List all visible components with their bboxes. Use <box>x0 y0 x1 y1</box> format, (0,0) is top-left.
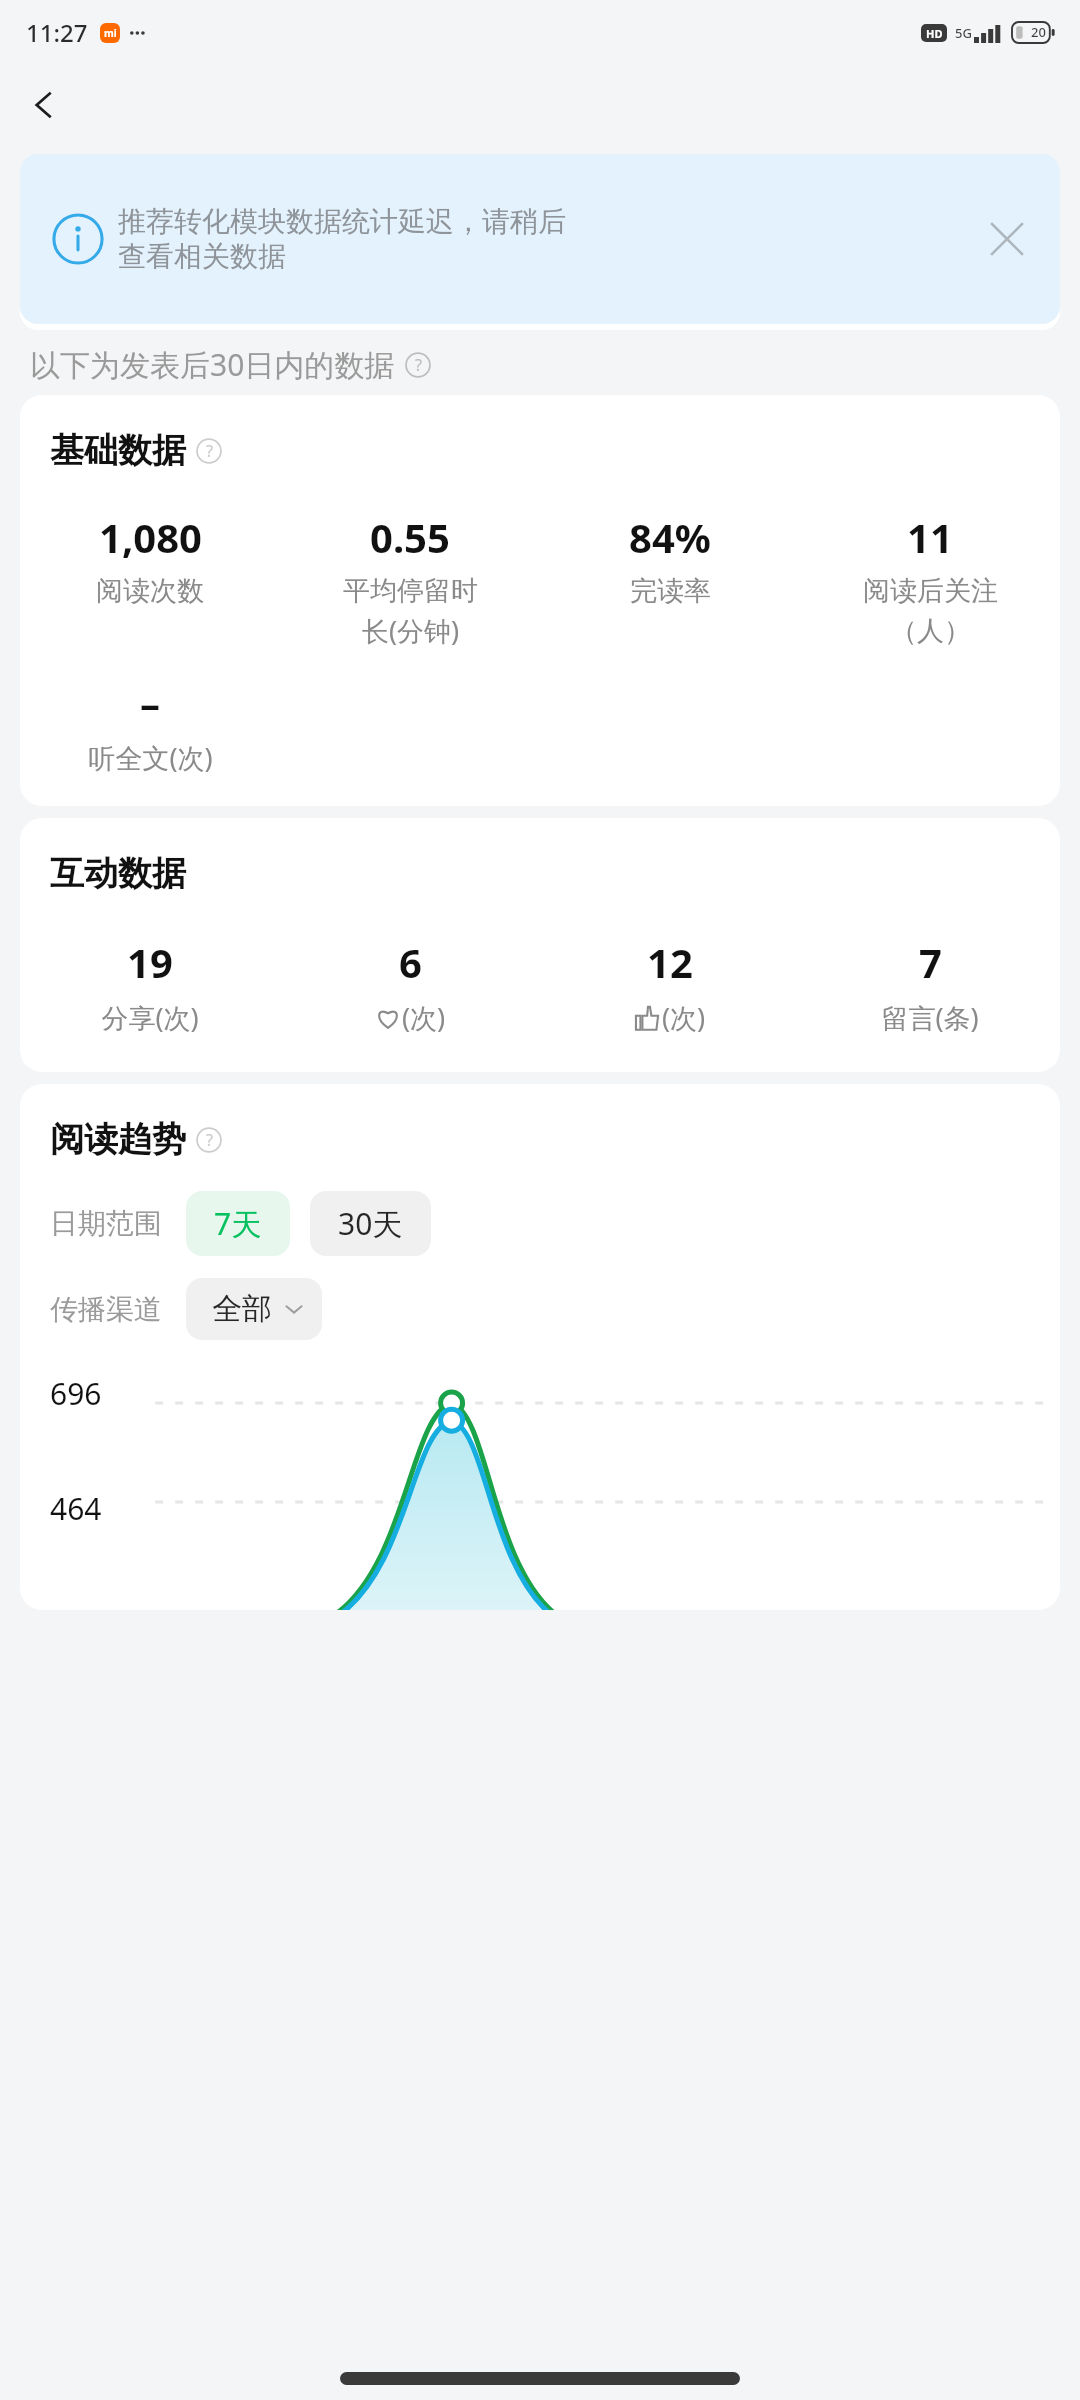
staticText: 平均停留时 长(分钟) <box>343 574 478 649</box>
staticText: (次) <box>402 999 446 1036</box>
staticText: 以下为发表后30日内的数据 <box>30 344 395 385</box>
staticText: 12 <box>647 935 693 989</box>
staticText: ? <box>415 354 422 376</box>
button[interactable]: Back <box>16 77 72 133</box>
staticText: mi <box>104 26 117 40</box>
button[interactable]: 已开启群发通知 2025/10/13 <box>20 210 1060 330</box>
staticText: 0.55 <box>370 510 450 564</box>
staticText: 1,080 <box>99 510 202 564</box>
button[interactable]: 1,080 <box>20 510 280 608</box>
staticText: 11:27 <box>26 16 88 49</box>
staticText: 7天 <box>214 1203 262 1244</box>
staticText: 日期范围 <box>50 1206 162 1241</box>
button[interactable]: 19 <box>20 935 280 1036</box>
button[interactable]: 30天 <box>310 1191 431 1256</box>
staticText: 阅读次数 <box>96 574 204 608</box>
staticText: 查看相关数据 <box>118 239 286 274</box>
button[interactable]: 7天 <box>186 1191 290 1256</box>
staticText: 完读率 <box>630 574 711 608</box>
staticText: 30天 <box>338 1203 403 1244</box>
staticText: ? <box>206 440 213 462</box>
button[interactable]: 12 <box>540 935 800 1036</box>
staticText: 分享(次) <box>101 999 199 1036</box>
staticText: 互动数据 <box>50 852 186 895</box>
button[interactable]: 推荐转化模块数据统计延迟，请稍后 <box>20 154 1060 324</box>
button[interactable]: – <box>20 675 280 776</box>
button[interactable]: 7 <box>800 935 1060 1036</box>
button[interactable]: 84% <box>540 510 800 608</box>
staticText: 5G <box>955 24 972 42</box>
staticText: ? <box>206 1129 213 1151</box>
button[interactable]: Close <box>976 208 1038 270</box>
staticText: 留言(条) <box>881 999 979 1036</box>
staticText: 696 <box>50 1373 102 1414</box>
staticText: 全部 <box>212 1290 272 1328</box>
button[interactable]: 0.55 <box>280 510 540 649</box>
staticText: 19 <box>127 935 173 989</box>
staticText: 6 <box>399 935 422 989</box>
staticText: 基础数据 <box>50 429 186 472</box>
staticText: 已开启群发通知 2025/10/13 <box>50 222 428 263</box>
staticText: HD <box>926 26 943 41</box>
staticText: 听全文(次) <box>88 739 213 776</box>
staticText: 阅读趋势 <box>50 1118 186 1161</box>
staticText: (次) <box>662 999 706 1036</box>
staticText: – <box>140 675 160 729</box>
button[interactable]: 全部 <box>186 1278 322 1340</box>
staticText: 阅读后关注 （人） <box>863 574 998 648</box>
staticText: 7 <box>919 935 942 989</box>
staticText: 传播渠道 <box>50 1292 162 1327</box>
staticText: 20 <box>1031 23 1046 41</box>
button[interactable]: 6 <box>280 935 540 1036</box>
staticText: 84% <box>629 510 711 564</box>
staticText: 464 <box>50 1488 102 1529</box>
staticText: 推荐转化模块数据统计延迟，请稍后 <box>118 204 566 239</box>
staticText: 11 <box>907 510 953 564</box>
button[interactable]: 11 <box>800 510 1060 648</box>
